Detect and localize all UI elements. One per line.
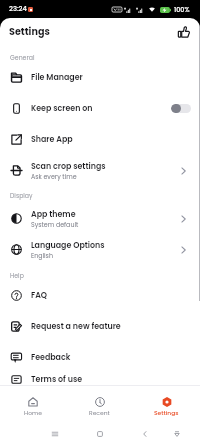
staticText: System default bbox=[31, 220, 79, 229]
staticText: Request a new feature bbox=[31, 321, 121, 332]
button[interactable]: Home bbox=[0, 386, 66, 422]
button[interactable]: Feedback bbox=[0, 342, 200, 373]
staticText: Language Options bbox=[31, 240, 105, 251]
staticText: 100% bbox=[174, 5, 190, 14]
button[interactable]: Rate this app bbox=[174, 22, 194, 42]
button[interactable]: Settings bbox=[133, 386, 200, 422]
button[interactable]: Language Options bbox=[0, 234, 200, 265]
staticText: Home bbox=[24, 409, 42, 417]
button[interactable]: Keep screen on toggle bbox=[171, 104, 191, 113]
other: Home bbox=[96, 430, 104, 438]
button[interactable]: Request a new feature bbox=[0, 311, 200, 342]
staticText: Help bbox=[10, 271, 24, 280]
staticText: Settings bbox=[9, 25, 50, 38]
staticText: File Manager bbox=[31, 72, 83, 83]
button[interactable]: File Manager bbox=[0, 62, 200, 93]
button[interactable]: Recent bbox=[66, 386, 133, 422]
staticText: FAQ bbox=[31, 290, 48, 301]
staticText: 23:24 bbox=[9, 4, 27, 14]
staticText: Feedback bbox=[31, 352, 71, 363]
staticText: Display bbox=[10, 191, 33, 200]
staticText: Ask every time bbox=[31, 172, 77, 181]
staticText: Share App bbox=[31, 134, 73, 145]
button[interactable]: Terms of use bbox=[0, 373, 200, 385]
staticText: Scan crop settings bbox=[31, 161, 106, 172]
staticText: Terms of use bbox=[31, 374, 83, 385]
button[interactable]: FAQ bbox=[0, 280, 200, 311]
other: Recent apps bbox=[51, 430, 59, 438]
staticText: Recent bbox=[89, 409, 110, 417]
staticText: Keep screen on bbox=[31, 103, 93, 114]
button[interactable]: Scan crop settings bbox=[0, 155, 200, 186]
button[interactable]: Share App bbox=[0, 124, 200, 155]
staticText: Settings bbox=[154, 409, 179, 417]
other: Hide keyboard bbox=[173, 430, 181, 438]
staticText: App theme bbox=[31, 209, 76, 220]
button[interactable]: Keep screen on bbox=[0, 93, 200, 124]
button[interactable]: App theme bbox=[0, 203, 200, 234]
staticText: English bbox=[31, 251, 53, 260]
staticText: General bbox=[10, 53, 35, 62]
other: Back bbox=[141, 430, 149, 438]
